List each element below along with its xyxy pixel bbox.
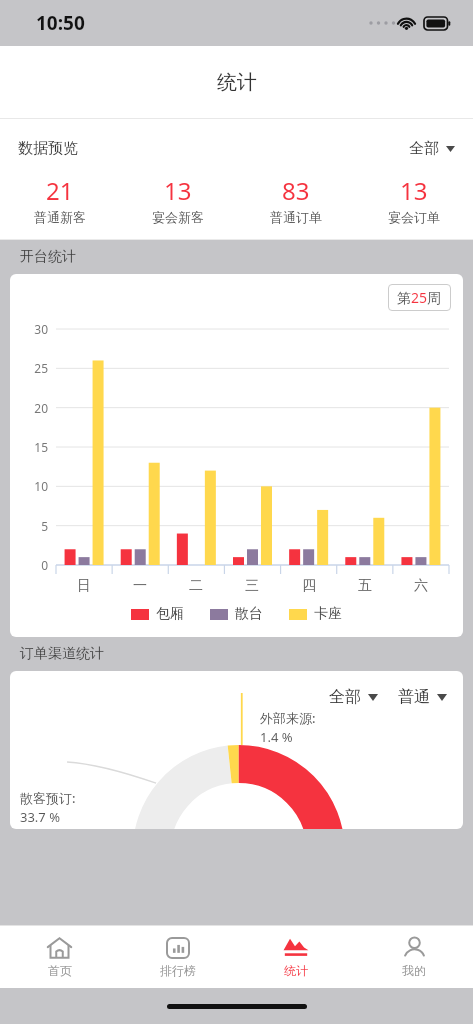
- staticText: 订单渠道统计: [20, 645, 104, 663]
- button[interactable]: 第25周: [388, 284, 451, 311]
- staticText: 1.4 %: [260, 728, 293, 746]
- button[interactable]: 统计: [237, 926, 355, 988]
- staticText: 21: [46, 174, 74, 207]
- button[interactable]: 13: [119, 174, 237, 225]
- staticText: 普通: [398, 687, 430, 707]
- button[interactable]: 包厢: [131, 605, 184, 623]
- staticText: 排行榜: [160, 963, 196, 978]
- staticText: 第25周: [397, 288, 442, 307]
- staticText: 散台: [235, 605, 263, 623]
- staticText: 包厢: [156, 605, 184, 623]
- staticText: 外部来源:: [260, 709, 316, 727]
- button[interactable]: 卡座: [289, 605, 342, 623]
- staticText: 10: [16, 478, 48, 494]
- staticText: 33.7 %: [20, 808, 60, 826]
- button[interactable]: 排行榜: [119, 926, 237, 988]
- staticText: 15: [16, 439, 48, 455]
- staticText: 首页: [48, 963, 72, 978]
- staticText: 统计: [284, 963, 308, 978]
- button[interactable]: 全部: [405, 135, 459, 162]
- staticText: 散客预订:: [20, 789, 76, 807]
- staticText: 25: [16, 360, 48, 376]
- staticText: 数据预览: [18, 139, 78, 158]
- staticText: 0: [16, 557, 48, 573]
- staticText: 普通新客: [34, 209, 86, 225]
- staticText: 20: [16, 400, 48, 416]
- staticText: 开台统计: [20, 248, 76, 266]
- staticText: 30: [16, 321, 48, 337]
- staticText: 我的: [402, 963, 426, 978]
- staticText: 宴会新客: [152, 209, 204, 225]
- staticText: 五: [337, 577, 393, 595]
- staticText: 全部: [409, 139, 439, 158]
- staticText: 卡座: [314, 605, 342, 623]
- button[interactable]: 83: [237, 174, 355, 225]
- staticText: 普通订单: [270, 209, 322, 225]
- staticText: 10:50: [36, 10, 85, 36]
- staticText: 三: [224, 577, 280, 595]
- staticText: 13: [400, 174, 428, 207]
- button[interactable]: 全部: [327, 685, 380, 709]
- button[interactable]: 13: [355, 174, 473, 225]
- button[interactable]: 首页: [0, 926, 119, 988]
- staticText: 一: [112, 577, 168, 595]
- staticText: 四: [281, 577, 337, 595]
- staticText: 13: [164, 174, 192, 207]
- staticText: 5: [16, 518, 48, 534]
- staticText: 全部: [329, 687, 361, 707]
- staticText: 统计: [217, 70, 257, 95]
- staticText: 日: [56, 577, 112, 595]
- button[interactable]: 散台: [210, 605, 263, 623]
- button[interactable]: 我的: [355, 926, 473, 988]
- staticText: 宴会订单: [388, 209, 440, 225]
- staticText: 83: [282, 174, 310, 207]
- button[interactable]: 21: [0, 174, 119, 225]
- staticText: 二: [168, 577, 224, 595]
- button[interactable]: 普通: [396, 685, 449, 709]
- staticText: 六: [393, 577, 449, 595]
